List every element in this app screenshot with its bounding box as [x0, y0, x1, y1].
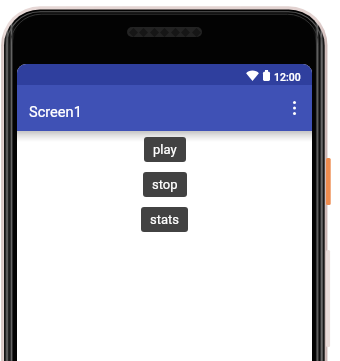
staticText: Screen1 — [29, 103, 82, 120]
button[interactable]: play — [144, 137, 186, 162]
staticText: stats — [150, 212, 179, 227]
staticText: play — [153, 142, 177, 157]
staticText: stop — [152, 177, 178, 192]
button[interactable]: stop — [143, 172, 187, 197]
staticText: 12:00 — [274, 71, 301, 83]
button[interactable]: More options — [279, 93, 309, 123]
button[interactable]: stats — [141, 207, 188, 232]
